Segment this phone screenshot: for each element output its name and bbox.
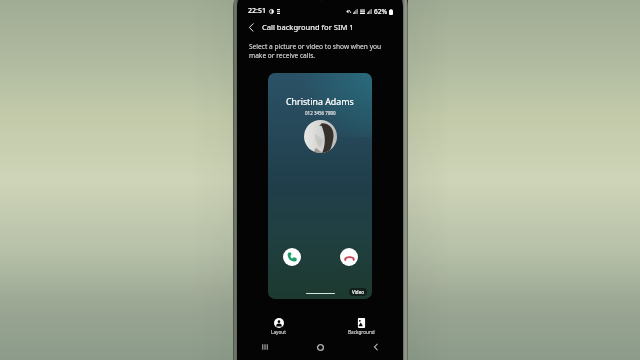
button[interactable]: Home — [293, 340, 348, 354]
button[interactable]: Back — [348, 340, 403, 354]
staticText: Select a picture or video to show when y… — [249, 42, 382, 60]
staticText: Video — [352, 289, 364, 295]
button[interactable]: Background — [320, 317, 403, 337]
button[interactable]: Navigate up — [243, 19, 259, 35]
staticText: 22:51 — [248, 6, 266, 16]
button[interactable]: Video — [352, 289, 364, 295]
button[interactable]: Layout — [237, 317, 320, 337]
staticText: Call background for SIM 1 — [262, 22, 354, 32]
button[interactable]: Answer call — [283, 248, 301, 266]
button[interactable]: Decline call — [340, 248, 358, 266]
button[interactable]: Christina Adams — [268, 73, 372, 299]
staticText: 62% — [374, 7, 387, 16]
staticText: Christina Adams — [286, 96, 354, 108]
staticText: Layout — [271, 329, 286, 335]
button[interactable]: Recents — [237, 340, 293, 354]
staticText: 012 3456 7890 — [305, 110, 336, 116]
staticText: Background — [348, 329, 375, 335]
